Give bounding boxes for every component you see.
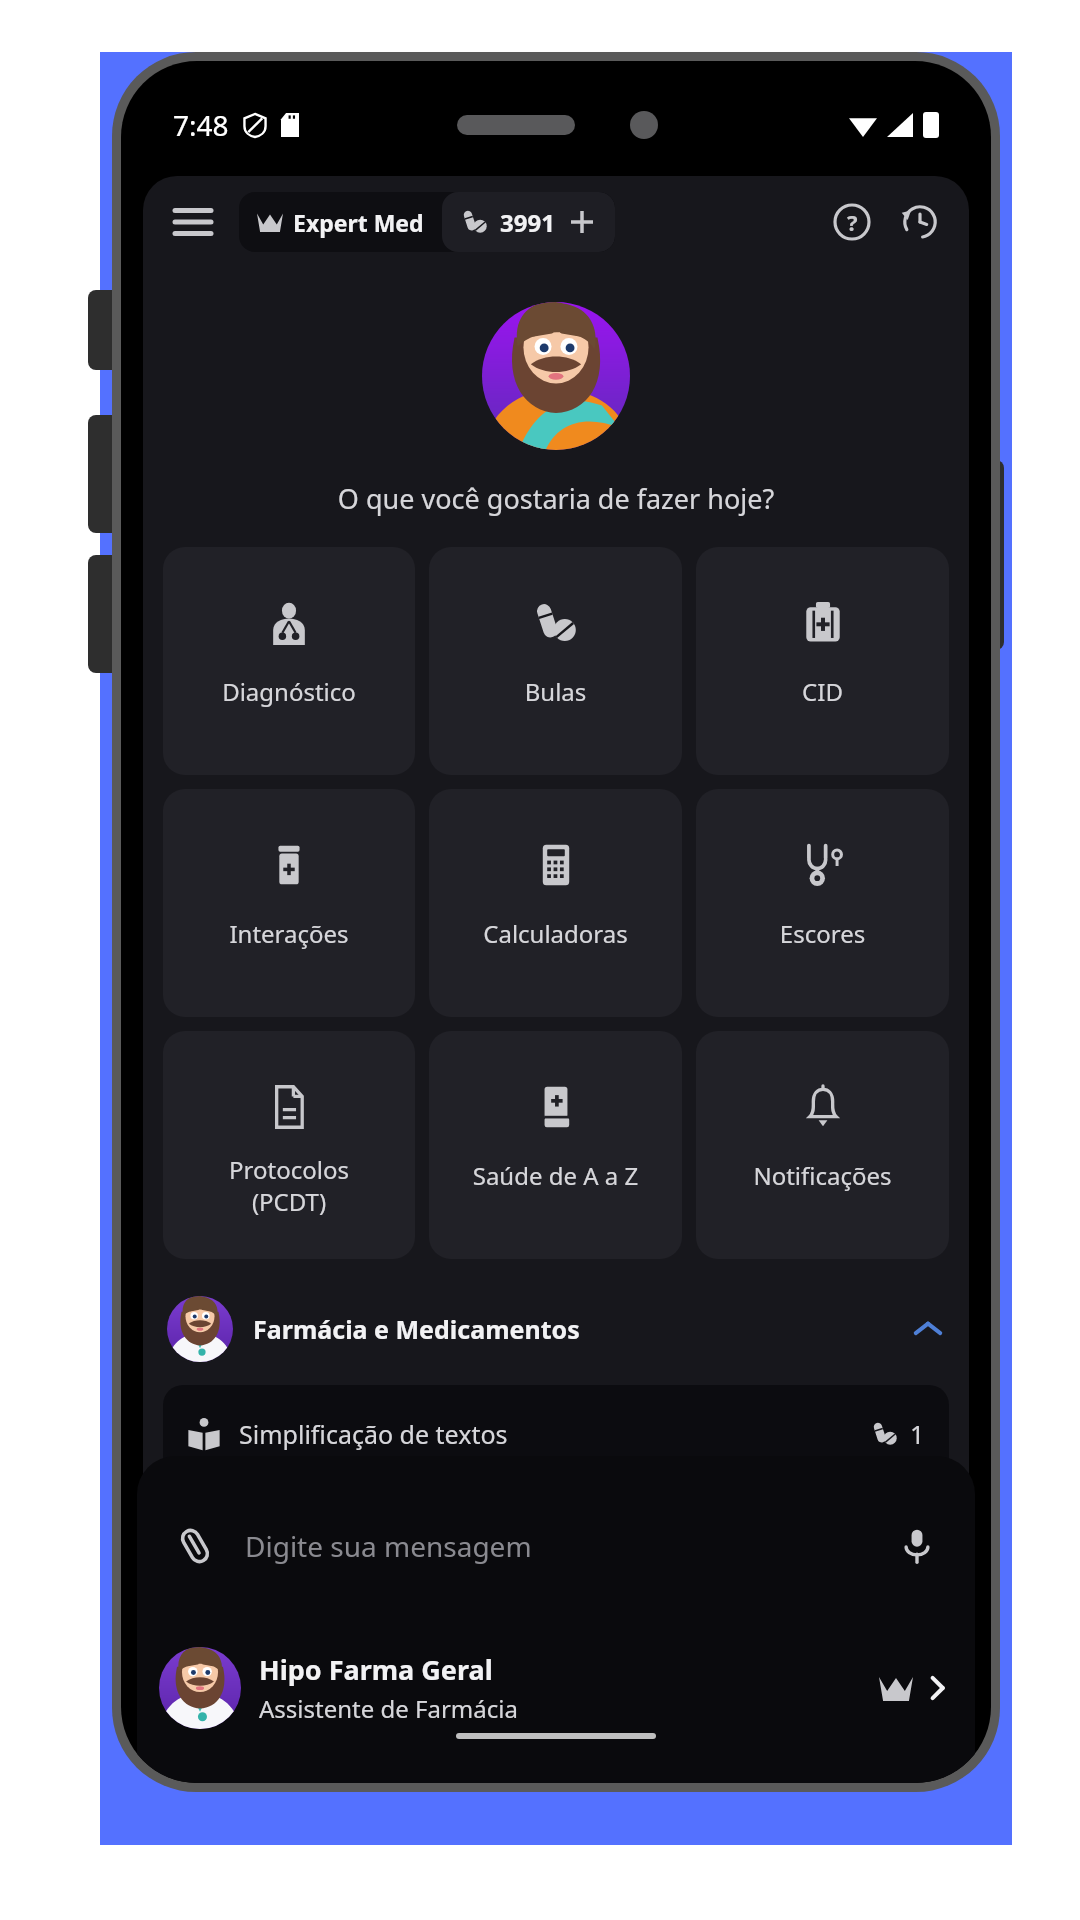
- button[interactable]: Hipo Farma Geral: [137, 1632, 975, 1744]
- staticText: Hipo Farma Geral: [259, 1651, 493, 1688]
- staticText: Simplificação de textos: [239, 1417, 508, 1451]
- button[interactable]: Bulas: [429, 547, 682, 775]
- staticText: 3991: [500, 206, 555, 239]
- staticText: Bulas: [429, 675, 682, 708]
- staticText: Escores: [696, 917, 949, 950]
- button[interactable]: Histórico: [893, 195, 947, 249]
- button[interactable]: Anexar: [137, 1504, 975, 1588]
- staticText: Saúde de A a Z: [429, 1159, 682, 1192]
- staticText: ?: [847, 207, 858, 237]
- button[interactable]: Diagnóstico: [163, 547, 415, 775]
- button[interactable]: Anexar: [169, 1520, 221, 1572]
- button[interactable]: Escores: [696, 789, 949, 1017]
- button[interactable]: Saúde de A a Z: [429, 1031, 682, 1259]
- button[interactable]: Ajuda: [825, 195, 879, 249]
- button[interactable]: Expert Med: [239, 192, 442, 252]
- button[interactable]: Notificações: [696, 1031, 949, 1259]
- staticText: Expert Med: [293, 207, 424, 238]
- staticText: 1: [910, 1417, 925, 1451]
- staticText: Calculadoras: [429, 917, 682, 950]
- staticText: Assistente de Farmácia: [259, 1692, 518, 1725]
- staticText: Notificações: [696, 1159, 949, 1192]
- button[interactable]: Protocolos (PCDT): [163, 1031, 415, 1259]
- button[interactable]: Simplificação de textos: [163, 1385, 949, 1483]
- button[interactable]: CID: [696, 547, 949, 775]
- staticText: Farmácia e Medicamentos: [253, 1312, 580, 1346]
- staticText: CID: [696, 675, 949, 708]
- button[interactable]: 3991: [442, 192, 615, 252]
- staticText: Diagnóstico: [163, 675, 415, 708]
- staticText: 7:48: [173, 106, 229, 144]
- staticText: Interações: [163, 917, 415, 950]
- button[interactable]: Calculadoras: [429, 789, 682, 1017]
- button[interactable]: Menu: [165, 194, 221, 250]
- button[interactable]: Interações: [163, 789, 415, 1017]
- button[interactable]: Gravar áudio: [891, 1520, 943, 1572]
- staticText: O que você gostaria de fazer hoje?: [143, 480, 969, 517]
- button[interactable]: Farmácia e Medicamentos: [143, 1285, 969, 1373]
- staticText: Protocolos (PCDT): [163, 1153, 415, 1218]
- staticText: Digite sua mensagem: [245, 1527, 532, 1565]
